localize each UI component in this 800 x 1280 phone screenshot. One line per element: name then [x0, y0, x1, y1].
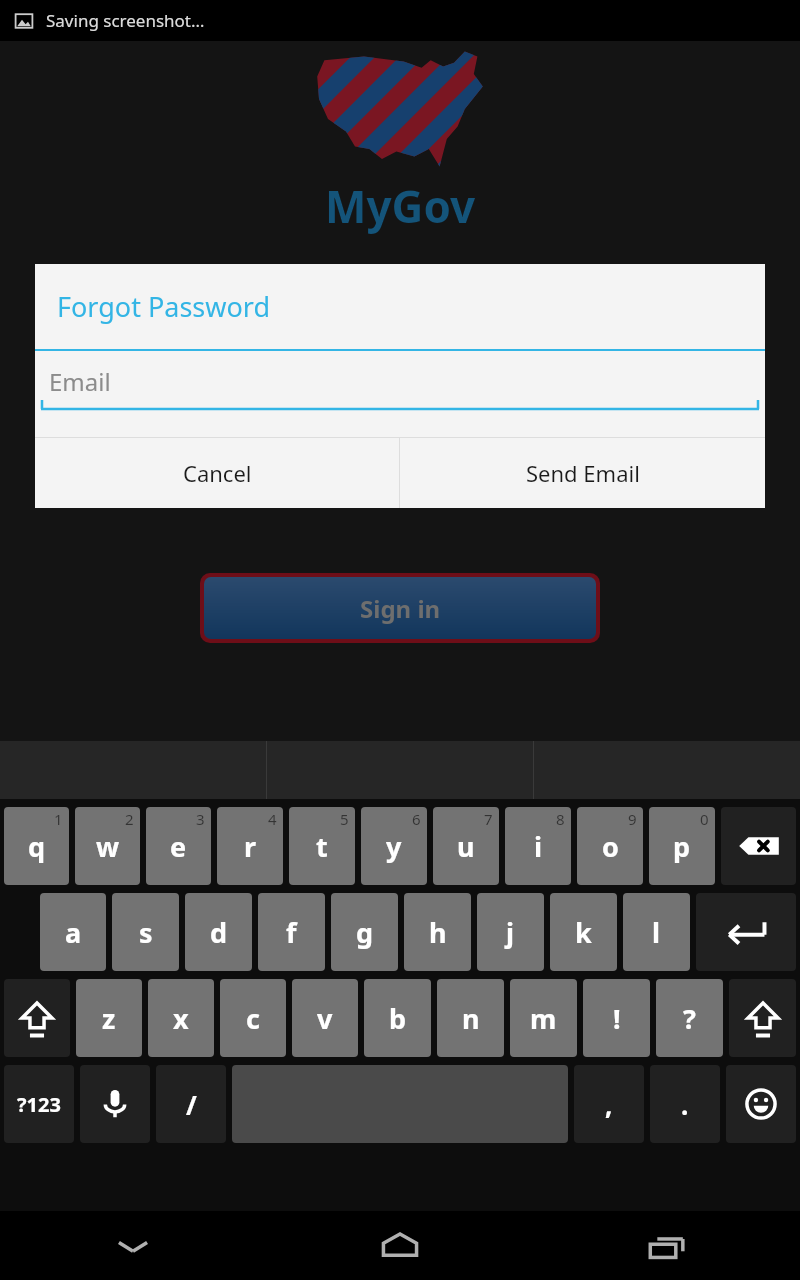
- button[interactable]: h: [404, 893, 471, 971]
- button[interactable]: s: [112, 893, 179, 971]
- staticText: 9: [628, 809, 637, 829]
- button[interactable]: c: [220, 979, 286, 1057]
- button[interactable]: a: [40, 893, 106, 971]
- button[interactable]: Cancel: [35, 438, 399, 508]
- staticText: h: [429, 914, 447, 951]
- staticText: 3: [196, 809, 205, 829]
- staticText: ?123: [17, 1091, 61, 1118]
- button[interactable]: Home: [266, 1211, 533, 1280]
- staticText: .: [681, 1087, 689, 1122]
- button[interactable]: 0: [649, 807, 715, 885]
- button[interactable]: !: [583, 979, 650, 1057]
- button[interactable]: Send Email: [400, 438, 765, 508]
- staticText: Send Email: [526, 458, 640, 488]
- staticText: 8: [556, 809, 565, 829]
- button[interactable]: ?: [656, 979, 723, 1057]
- staticText: k: [575, 914, 592, 951]
- staticText: Cancel: [183, 458, 252, 488]
- staticText: 5: [340, 809, 349, 829]
- staticText: c: [246, 1000, 260, 1037]
- button[interactable]: 1: [4, 807, 69, 885]
- button[interactable]: n: [437, 979, 504, 1057]
- button[interactable]: /: [156, 1065, 226, 1143]
- staticText: 7: [484, 809, 493, 829]
- staticText: 6: [412, 809, 421, 829]
- staticText: x: [173, 1000, 189, 1037]
- button[interactable]: 8: [505, 807, 571, 885]
- staticText: j: [506, 914, 515, 951]
- button[interactable]: z: [76, 979, 142, 1057]
- staticText: Forgot Password: [57, 288, 271, 325]
- staticText: MyGov: [325, 176, 476, 236]
- staticText: e: [170, 828, 187, 865]
- staticText: Email: [49, 365, 111, 398]
- button[interactable]: 4: [217, 807, 283, 885]
- button[interactable]: Sign in: [204, 577, 596, 639]
- button[interactable]: .: [650, 1065, 720, 1143]
- staticText: b: [389, 1000, 407, 1037]
- staticText: t: [316, 828, 328, 865]
- button[interactable]: ,: [574, 1065, 644, 1143]
- button[interactable]: 9: [577, 807, 643, 885]
- button[interactable]: j: [477, 893, 544, 971]
- button[interactable]: Hide keyboard: [0, 1211, 266, 1280]
- button[interactable]: Shift: [4, 979, 70, 1057]
- button[interactable]: Voice input: [80, 1065, 150, 1143]
- button[interactable]: 7: [433, 807, 499, 885]
- staticText: w: [96, 828, 120, 865]
- staticText: Saving screenshot…: [46, 9, 205, 32]
- button[interactable]: l: [623, 893, 690, 971]
- staticText: l: [652, 914, 661, 951]
- staticText: ?: [683, 1000, 696, 1037]
- button[interactable]: Recent apps: [533, 1211, 800, 1280]
- staticText: r: [244, 828, 257, 865]
- staticText: d: [210, 914, 228, 951]
- button[interactable]: v: [292, 979, 358, 1057]
- staticText: a: [65, 914, 82, 951]
- staticText: ,: [605, 1087, 613, 1122]
- staticText: u: [457, 828, 475, 865]
- button[interactable]: 6: [361, 807, 427, 885]
- staticText: n: [462, 1000, 480, 1037]
- staticText: 2: [125, 809, 134, 829]
- staticText: !: [613, 1000, 621, 1037]
- button[interactable]: g: [331, 893, 398, 971]
- button[interactable]: k: [550, 893, 617, 971]
- button[interactable]: f: [258, 893, 325, 971]
- button[interactable]: b: [364, 979, 431, 1057]
- button[interactable]: Backspace: [721, 807, 796, 885]
- staticText: 0: [700, 809, 709, 829]
- staticText: Sign in: [360, 592, 441, 625]
- button[interactable]: Emoji: [726, 1065, 796, 1143]
- button[interactable]: d: [185, 893, 252, 971]
- button[interactable]: ?123: [4, 1065, 74, 1143]
- staticText: m: [530, 1000, 557, 1037]
- button[interactable]: 5: [289, 807, 355, 885]
- staticText: o: [602, 828, 619, 865]
- staticText: v: [317, 1000, 333, 1037]
- button[interactable]: m: [510, 979, 577, 1057]
- button[interactable]: Shift: [729, 979, 796, 1057]
- staticText: s: [139, 914, 153, 951]
- button[interactable]: x: [148, 979, 214, 1057]
- staticText: /: [186, 1087, 197, 1122]
- staticText: 1: [54, 809, 63, 829]
- staticText: f: [286, 914, 297, 951]
- staticText: y: [386, 828, 402, 865]
- staticText: g: [356, 914, 374, 951]
- button[interactable]: Enter: [696, 893, 796, 971]
- staticText: 4: [268, 809, 277, 829]
- button[interactable]: 3: [146, 807, 211, 885]
- staticText: z: [102, 1000, 116, 1037]
- staticText: q: [28, 828, 46, 865]
- staticText: i: [534, 828, 543, 865]
- staticText: p: [673, 828, 691, 865]
- button[interactable]: 2: [75, 807, 140, 885]
